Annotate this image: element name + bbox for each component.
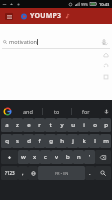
- staticText: k: [82, 137, 86, 145]
- button[interactable]: v: [51, 150, 62, 164]
- staticText: i: [83, 121, 85, 129]
- staticText: 99%: [81, 2, 89, 7]
- staticText: ?123: [5, 170, 15, 176]
- button[interactable]: t: [45, 118, 56, 132]
- button[interactable]: Shift: [1, 150, 18, 164]
- button[interactable]: e: [23, 118, 34, 132]
- staticText: y: [60, 121, 64, 129]
- button[interactable]: Recent apps: [100, 71, 111, 82]
- staticText: ': [89, 153, 91, 161]
- button[interactable]: x: [29, 150, 40, 164]
- staticText: u: [71, 121, 75, 129]
- staticText: .: [89, 169, 91, 177]
- button[interactable]: n: [73, 150, 84, 164]
- button[interactable]: m: [100, 134, 111, 148]
- button[interactable]: Comma: [18, 166, 28, 180]
- button[interactable]: Hide keyboard: [100, 38, 111, 49]
- button[interactable]: b: [62, 150, 73, 164]
- staticText: f: [38, 137, 41, 145]
- staticText: q: [5, 137, 9, 145]
- button[interactable]: k: [78, 134, 89, 148]
- button[interactable]: a: [1, 118, 12, 132]
- button[interactable]: h: [56, 134, 67, 148]
- button[interactable]: Voice input: [100, 104, 112, 118]
- button[interactable]: for: [72, 104, 100, 118]
- button[interactable]: i: [78, 118, 89, 132]
- button[interactable]: Voice search: [99, 37, 109, 47]
- button[interactable]: Home: [100, 49, 111, 60]
- staticText: o: [93, 121, 97, 129]
- button[interactable]: z: [12, 118, 23, 132]
- staticText: s: [16, 137, 19, 145]
- button[interactable]: Open navigation menu: [0, 8, 18, 24]
- staticText: w: [21, 153, 26, 161]
- button[interactable]: j: [67, 134, 78, 148]
- staticText: to: [54, 108, 60, 115]
- button[interactable]: o: [89, 118, 100, 132]
- button[interactable]: ': [84, 150, 95, 164]
- staticText: c: [44, 153, 47, 161]
- staticText: p: [104, 121, 108, 129]
- button[interactable]: g: [45, 134, 56, 148]
- staticText: m: [103, 137, 109, 145]
- button[interactable]: Search: [95, 166, 111, 180]
- staticText: g: [49, 137, 53, 145]
- button[interactable]: f: [34, 134, 45, 148]
- button[interactable]: ?123: [1, 166, 18, 180]
- staticText: v: [55, 153, 59, 161]
- button[interactable]: c: [40, 150, 51, 164]
- staticText: FR • EN: [55, 171, 69, 176]
- button[interactable]: and: [14, 104, 42, 118]
- button[interactable]: p: [100, 118, 111, 132]
- button[interactable]: Back: [100, 60, 111, 71]
- button[interactable]: Change language: [28, 166, 38, 180]
- staticText: n: [77, 153, 81, 161]
- button[interactable]: d: [23, 134, 34, 148]
- staticText: r: [38, 121, 41, 129]
- staticText: x: [33, 153, 37, 161]
- staticText: YOUMP3: [30, 11, 62, 21]
- button[interactable]: Period: [85, 166, 95, 180]
- staticText: j: [72, 137, 74, 145]
- button[interactable]: q: [1, 134, 12, 148]
- button[interactable]: u: [67, 118, 78, 132]
- button[interactable]: s: [12, 134, 23, 148]
- staticText: d: [27, 137, 31, 145]
- staticText: for: [82, 108, 90, 115]
- button[interactable]: r: [34, 118, 45, 132]
- button[interactable]: Backspace: [95, 150, 111, 164]
- button[interactable]: y: [56, 118, 67, 132]
- button[interactable]: w: [18, 150, 29, 164]
- button[interactable]: Google: [0, 104, 14, 118]
- staticText: l: [94, 137, 96, 145]
- button[interactable]: motivation: [0, 35, 112, 48]
- staticText: a: [5, 121, 9, 129]
- staticText: t: [49, 121, 52, 129]
- button[interactable]: to: [43, 104, 71, 118]
- staticText: b: [66, 153, 70, 161]
- staticText: 10:43: [99, 2, 110, 7]
- staticText: ,: [22, 169, 24, 177]
- staticText: z: [16, 121, 19, 129]
- staticText: motivation: [9, 38, 37, 45]
- button[interactable]: Space: [38, 166, 85, 180]
- staticText: and: [23, 108, 33, 115]
- staticText: e: [27, 121, 31, 129]
- staticText: h: [60, 137, 64, 145]
- button[interactable]: l: [89, 134, 100, 148]
